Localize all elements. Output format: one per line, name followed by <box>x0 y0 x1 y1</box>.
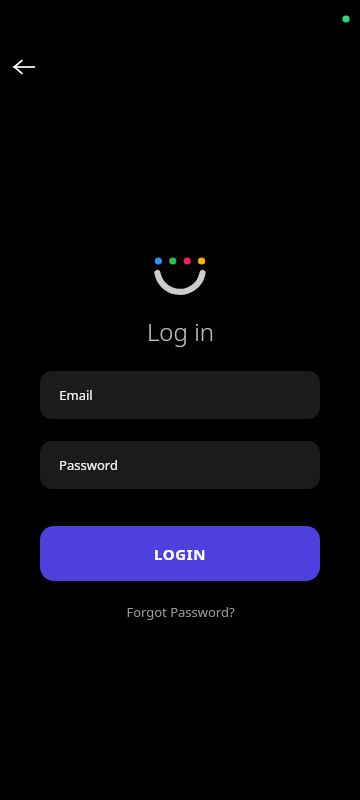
staticText: Password <box>59 456 118 474</box>
button[interactable]: Email <box>40 371 320 419</box>
staticText: Log in <box>147 315 214 348</box>
staticText: LOGIN <box>154 544 206 564</box>
button[interactable]: LOGIN <box>40 526 320 581</box>
staticText: Forgot Password? <box>126 603 235 621</box>
button[interactable]: Back <box>6 49 42 85</box>
button[interactable]: Forgot Password? <box>114 598 247 626</box>
button[interactable]: Password <box>40 441 320 489</box>
staticText: Email <box>59 386 93 404</box>
